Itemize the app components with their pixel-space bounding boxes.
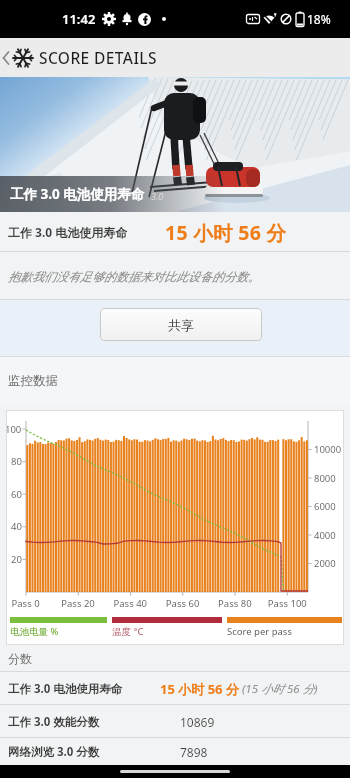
staticText: 18% [307,11,331,27]
staticText: 网络浏览 3.0 分数 [8,744,100,760]
staticText: 分数 [8,651,32,666]
button[interactable]: 工作 3.0 效能分数 [0,705,350,738]
staticText: 11:42 [62,10,96,28]
staticText: 15 小时 56 分 [160,680,239,698]
staticText: 抱歉我们没有足够的数据来对比此设备的分数。 [8,269,260,284]
staticText: 工作 3.0 电池使用寿命 [10,185,145,203]
staticText: 工作 3.0 电池使用寿命 [8,224,128,240]
staticText: 工作 3.0 电池使用寿命 [8,681,123,697]
staticText: 监控数据 [8,373,58,389]
button[interactable]: 共享 [100,308,262,341]
button[interactable]: 工作 3.0 电池使用寿命 [0,672,350,705]
staticText: (15 小时 56 分) [239,681,318,697]
button[interactable] [0,38,12,77]
staticText: 共享 [168,317,194,333]
staticText: 3.0 [151,190,164,202]
staticText: 15 小时 56 分 [165,219,287,246]
staticText: 7898 [180,744,208,760]
staticText: 10869 [180,714,215,730]
button[interactable]: 网络浏览 3.0 分数 [0,738,350,765]
staticText: SCORE DETAILS [39,47,157,68]
staticText: 工作 3.0 效能分数 [8,714,100,730]
